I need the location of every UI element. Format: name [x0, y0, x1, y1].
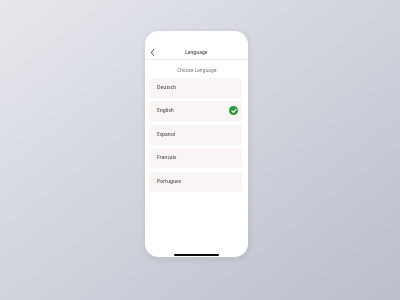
button[interactable]: Portugues — [149, 172, 242, 192]
staticText: Choose Language: — [177, 67, 218, 73]
button[interactable]: Back — [145, 44, 160, 59]
button[interactable]: Espanol — [149, 125, 242, 145]
staticText: Language — [185, 49, 208, 55]
button[interactable]: Deutsch — [149, 78, 242, 98]
staticText: Deutsch — [157, 84, 177, 91]
staticText: Francais — [157, 154, 177, 161]
staticText: Espanol — [157, 131, 176, 138]
staticText: Portugues — [157, 178, 182, 185]
staticText: English — [157, 107, 174, 114]
button[interactable]: English — [149, 101, 242, 121]
other: Selected — [229, 106, 238, 115]
button[interactable]: Francais — [149, 148, 242, 168]
